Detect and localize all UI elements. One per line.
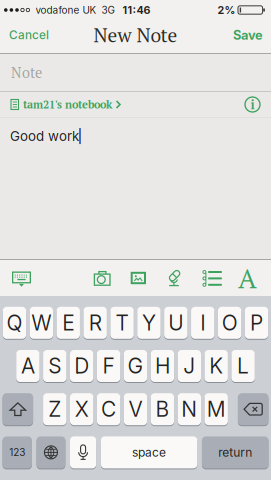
staticText: B xyxy=(155,396,169,422)
button[interactable]: Attach photo xyxy=(111,272,146,284)
button[interactable]: S xyxy=(43,350,66,383)
staticText: D xyxy=(74,353,89,379)
button[interactable]: B xyxy=(151,393,174,426)
button[interactable]: Note info xyxy=(245,97,271,112)
button[interactable]: Y xyxy=(137,307,161,340)
button[interactable]: D xyxy=(70,350,93,383)
staticText: 3G xyxy=(102,4,115,16)
button[interactable]: Z xyxy=(43,393,66,426)
button[interactable]: L xyxy=(231,350,255,383)
staticText: M xyxy=(207,396,226,422)
button[interactable]: O xyxy=(218,307,241,340)
button[interactable]: Numbers xyxy=(3,436,32,469)
staticText: V xyxy=(128,396,142,422)
button[interactable]: Record audio xyxy=(146,269,182,287)
button[interactable]: Dictation xyxy=(70,436,96,469)
staticText: Note xyxy=(11,63,42,82)
staticText: S xyxy=(48,353,61,379)
staticText: Save xyxy=(233,27,263,43)
button[interactable]: Delete xyxy=(238,393,268,426)
staticText: E xyxy=(62,310,74,335)
staticText: i xyxy=(250,96,254,113)
staticText: A xyxy=(21,353,35,379)
staticText: New Note xyxy=(93,22,177,48)
staticText: Cancel xyxy=(9,28,49,42)
button[interactable]: Cancel xyxy=(0,28,49,42)
staticText: J xyxy=(183,353,195,379)
staticText: Z xyxy=(48,396,61,422)
button[interactable]: Note title xyxy=(0,54,271,91)
button[interactable]: N xyxy=(178,393,201,426)
staticText: W xyxy=(31,310,51,335)
staticText: return xyxy=(218,445,252,460)
button[interactable]: Return xyxy=(202,436,268,469)
staticText: I xyxy=(200,310,205,335)
button[interactable]: Shift xyxy=(3,393,33,426)
button[interactable]: Formatting xyxy=(222,260,271,296)
staticText: T xyxy=(115,310,128,335)
button[interactable]: U xyxy=(164,307,188,340)
button[interactable]: V xyxy=(124,393,147,426)
staticText: N xyxy=(181,396,197,422)
staticText: Y xyxy=(142,310,156,335)
button[interactable]: T xyxy=(110,307,134,340)
staticText: O xyxy=(222,310,238,335)
button[interactable]: X xyxy=(70,393,93,426)
button[interactable]: J xyxy=(178,350,201,383)
staticText: L xyxy=(237,353,249,379)
button[interactable]: F xyxy=(97,350,120,383)
staticText: U xyxy=(168,310,183,335)
button[interactable]: R xyxy=(83,307,107,340)
staticText: space xyxy=(132,445,166,460)
button[interactable]: C xyxy=(97,393,120,426)
button[interactable]: M xyxy=(204,393,228,426)
staticText: P xyxy=(250,310,263,335)
button[interactable]: E xyxy=(56,307,80,340)
staticText: tam21's notebook xyxy=(23,97,112,112)
button[interactable]: Camera xyxy=(94,270,111,286)
button[interactable]: K xyxy=(204,350,228,383)
button[interactable]: Space xyxy=(101,436,197,469)
button[interactable]: List xyxy=(182,270,222,286)
button[interactable]: G xyxy=(124,350,147,383)
staticText: Q xyxy=(6,310,22,335)
staticText: X xyxy=(75,396,89,422)
staticText: vodafone UK xyxy=(36,4,97,16)
button[interactable]: Dismiss keyboard xyxy=(0,269,31,287)
staticText: G xyxy=(127,353,143,379)
staticText: C xyxy=(101,396,116,422)
button[interactable]: Next keyboard xyxy=(37,436,65,469)
staticText: H xyxy=(155,353,170,379)
button[interactable]: Save xyxy=(233,27,271,43)
staticText: Good work xyxy=(10,128,79,144)
staticText: A xyxy=(238,260,257,296)
button[interactable]: P xyxy=(245,307,268,340)
staticText: K xyxy=(209,353,223,379)
button[interactable]: tam21's notebook xyxy=(0,97,121,112)
button[interactable]: H xyxy=(151,350,174,383)
staticText: 2% xyxy=(217,3,235,16)
staticText: 11:46 xyxy=(123,3,151,16)
staticText: R xyxy=(89,310,102,335)
button[interactable]: Q xyxy=(3,307,26,340)
button[interactable]: W xyxy=(30,307,53,340)
button[interactable]: A xyxy=(16,350,40,383)
staticText: 123 xyxy=(9,446,25,458)
staticText: F xyxy=(103,353,115,379)
button[interactable]: I xyxy=(191,307,214,340)
